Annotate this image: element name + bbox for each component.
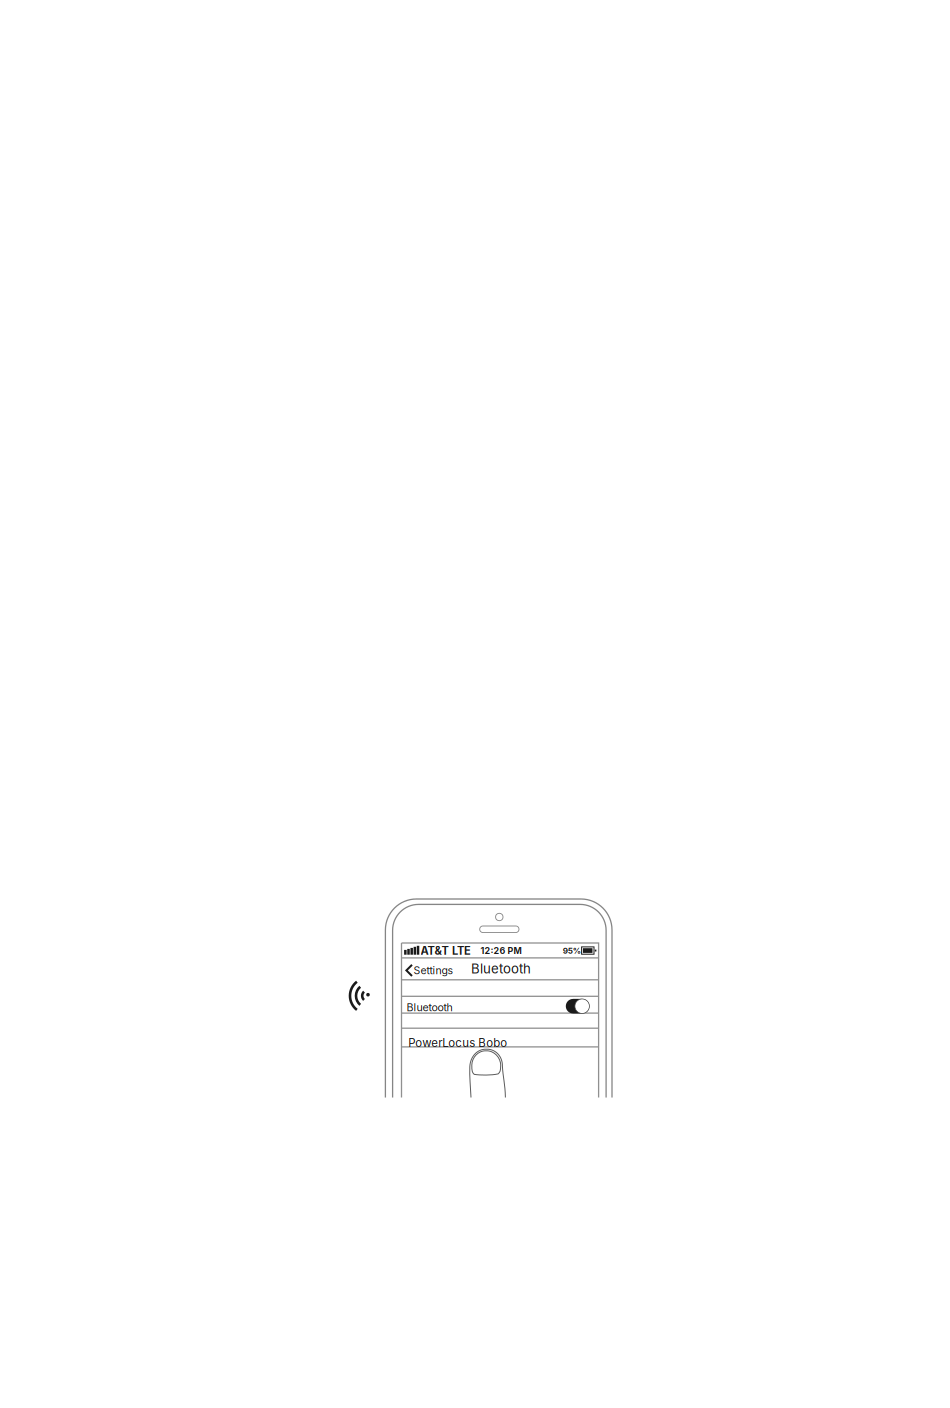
- button[interactable]: PowerLocus Bobo: [401, 1033, 599, 1052]
- button[interactable]: Settings: [406, 959, 454, 981]
- staticText: LTE: [452, 944, 471, 957]
- staticText: Bluetooth: [471, 961, 531, 977]
- staticText: 95%: [563, 946, 581, 956]
- staticText: 12:26 PM: [480, 945, 521, 956]
- staticText: Bluetooth: [407, 1001, 453, 1014]
- staticText: AT&T: [421, 944, 449, 957]
- staticText: PowerLocus Bobo: [408, 1036, 507, 1050]
- button[interactable]: Bluetooth: [401, 997, 599, 1016]
- staticText: Settings: [413, 964, 453, 977]
